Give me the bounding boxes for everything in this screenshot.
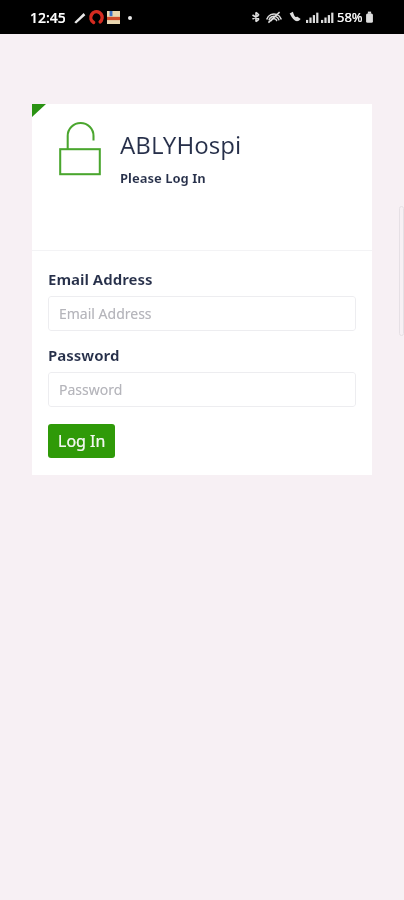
staticText: Password bbox=[59, 380, 123, 399]
button[interactable]: Email Address bbox=[48, 296, 356, 331]
other: Unlocked padlock bbox=[32, 104, 372, 475]
staticText: 58% bbox=[337, 8, 363, 26]
button[interactable]: Log In bbox=[48, 424, 115, 458]
button[interactable]: Password bbox=[48, 372, 356, 407]
staticText: Password bbox=[48, 345, 120, 365]
staticText: 12:45 bbox=[30, 8, 66, 27]
staticText: Email Address bbox=[48, 269, 153, 289]
staticText: ABLYHospi bbox=[120, 128, 242, 161]
staticText: Log In bbox=[58, 430, 106, 452]
staticText: Email Address bbox=[59, 304, 152, 323]
staticText: Please Log In bbox=[120, 169, 206, 187]
